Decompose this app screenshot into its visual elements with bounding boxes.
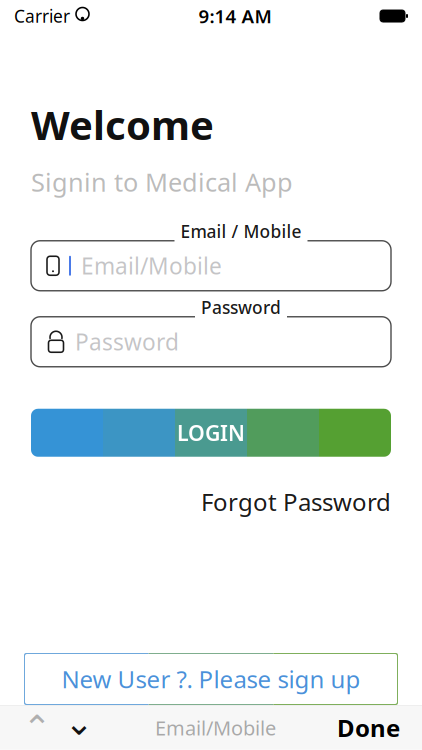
staticText: New User ?. Please sign up: [61, 663, 360, 695]
staticText: 9:14 AM: [198, 4, 271, 28]
staticText: Carrier: [14, 4, 70, 27]
staticText: ⌄: [64, 703, 93, 742]
staticText: Password: [201, 296, 281, 319]
button[interactable]: New User ?. Please sign up: [24, 653, 398, 705]
staticText: Signin to Medical App: [31, 165, 293, 199]
staticText: Email / Mobile: [180, 220, 301, 243]
button[interactable]: Next field: [58, 706, 100, 750]
staticText: Password: [75, 327, 179, 357]
button[interactable]: Forgot Password: [31, 487, 391, 517]
staticText: Email/Mobile: [155, 714, 276, 741]
button[interactable]: Done: [331, 706, 406, 750]
staticText: Email/Mobile: [81, 251, 222, 281]
staticText: Welcome: [31, 98, 214, 151]
staticText: ⌃: [22, 708, 51, 747]
staticText: Forgot Password: [201, 486, 391, 518]
button[interactable]: Previous field: [16, 706, 58, 750]
staticText: Done: [337, 712, 400, 744]
staticText: LOGIN: [177, 419, 245, 447]
button[interactable]: LOGIN: [31, 409, 391, 457]
